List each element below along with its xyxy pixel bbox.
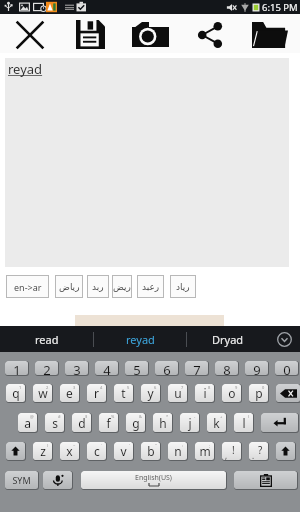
staticText: a (24, 415, 31, 431)
button[interactable]: ? (249, 442, 268, 460)
button[interactable]: Save (60, 14, 120, 53)
staticText: ' (129, 443, 130, 448)
button[interactable]: en->ar (6, 275, 49, 298)
staticText: 9 (235, 385, 238, 390)
button[interactable]: g (126, 413, 145, 432)
button[interactable]: c (87, 442, 106, 460)
button[interactable]: w (33, 384, 52, 402)
staticText: ) (47, 443, 49, 448)
button[interactable]: Voice input (43, 471, 72, 489)
button[interactable]: f (99, 413, 118, 432)
staticText: s (52, 415, 58, 431)
staticText: - (194, 414, 196, 419)
button[interactable]: 8 (215, 361, 238, 375)
staticText: e (66, 385, 73, 401)
staticText: : (182, 443, 184, 448)
button[interactable]: Enter (261, 413, 298, 432)
staticText: k (213, 415, 220, 431)
button[interactable]: SYM (5, 471, 38, 489)
button[interactable]: Shift (6, 442, 25, 460)
staticText: t (121, 385, 126, 401)
staticText: q (12, 385, 20, 401)
staticText: o (228, 385, 236, 401)
button[interactable]: p (249, 384, 268, 402)
staticText: 7 (193, 361, 201, 375)
button[interactable]: 6 (155, 361, 178, 375)
staticText: 8 (208, 385, 211, 390)
staticText: v (120, 443, 127, 459)
button[interactable]: a (18, 413, 37, 432)
staticText: + (220, 414, 223, 419)
button[interactable]: v (114, 442, 133, 460)
button[interactable]: رياض (55, 275, 83, 298)
button[interactable]: 0 (275, 361, 298, 375)
button[interactable]: n (168, 442, 187, 460)
staticText: 2 (43, 361, 51, 375)
button[interactable]: ! (222, 442, 241, 460)
button[interactable]: Clipboard (234, 471, 297, 489)
button[interactable]: رياد (170, 275, 196, 298)
button[interactable]: i (195, 384, 214, 402)
staticText: 1 (19, 385, 22, 390)
staticText: @ (30, 414, 34, 419)
staticText: ? (258, 443, 263, 457)
staticText: 1 (13, 361, 21, 375)
staticText: ~ (73, 443, 76, 448)
staticText: l (242, 415, 246, 431)
button[interactable]: Shift (276, 442, 295, 460)
staticText: p (255, 385, 263, 401)
button[interactable]: English(US) (81, 471, 226, 489)
staticText: 9 (253, 361, 261, 375)
button[interactable]: u (168, 384, 187, 402)
button[interactable]: 5 (125, 361, 148, 375)
button[interactable]: h (153, 413, 172, 432)
button[interactable]: رعبد (137, 275, 164, 298)
button[interactable]: z (33, 442, 52, 460)
staticText: x (66, 443, 73, 459)
staticText: ; (209, 443, 211, 448)
button[interactable]: r (87, 384, 106, 402)
button[interactable]: Dryad (187, 326, 268, 352)
staticText: b (147, 443, 155, 459)
button[interactable]: ربد (87, 275, 109, 298)
button[interactable]: 1 (5, 361, 28, 375)
button[interactable]: ريض (112, 275, 132, 298)
button[interactable]: 4 (95, 361, 118, 375)
staticText: % (111, 414, 115, 419)
staticText: 6 (154, 385, 157, 390)
button[interactable]: b (141, 442, 160, 460)
button[interactable]: Expand suggestions (268, 326, 300, 352)
button[interactable]: Open folder (240, 14, 300, 53)
button[interactable]: Share (180, 14, 240, 53)
button[interactable]: o (222, 384, 241, 402)
button[interactable]: 3 (65, 361, 88, 375)
button[interactable]: d (72, 413, 91, 432)
button[interactable]: reyad (5, 58, 289, 267)
button[interactable]: read (0, 326, 93, 352)
button[interactable]: l (234, 413, 253, 432)
button[interactable]: Camera (120, 14, 180, 53)
staticText: c (94, 443, 100, 459)
button[interactable]: Backspace (276, 384, 300, 402)
button[interactable]: m (195, 442, 214, 460)
staticText: رياض (59, 282, 80, 292)
button[interactable]: 7 (185, 361, 208, 375)
staticText: h (159, 415, 167, 431)
button[interactable]: e (60, 384, 79, 402)
staticText: English(US) (135, 473, 172, 483)
button[interactable]: j (180, 413, 199, 432)
staticText: m (199, 443, 211, 459)
staticText: z (40, 443, 46, 459)
button[interactable]: q (6, 384, 25, 402)
button[interactable]: x (60, 442, 79, 460)
button[interactable]: reyad (94, 326, 186, 352)
button[interactable]: y (141, 384, 160, 402)
button[interactable]: s (45, 413, 64, 432)
button[interactable]: 2 (35, 361, 58, 375)
button[interactable]: t (114, 384, 133, 402)
button[interactable]: 9 (245, 361, 268, 375)
button[interactable]: Close (0, 14, 60, 53)
staticText: 7 (181, 385, 184, 390)
staticText: 4 (103, 361, 111, 375)
button[interactable]: k (207, 413, 226, 432)
